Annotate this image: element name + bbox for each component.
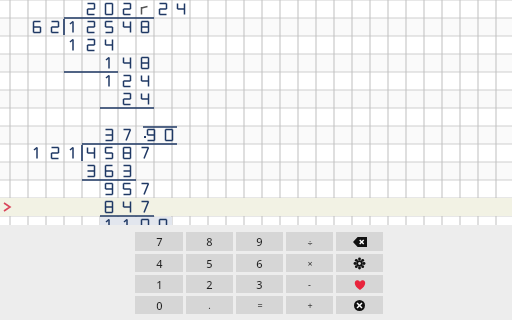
staticText: × bbox=[307, 257, 313, 269]
staticText: 5 bbox=[206, 256, 213, 271]
button[interactable]: 2 bbox=[186, 275, 233, 293]
button[interactable]: 8 bbox=[186, 232, 233, 251]
button[interactable]: Settings bbox=[336, 254, 383, 272]
staticText: - bbox=[308, 278, 311, 290]
button[interactable]: 5 bbox=[186, 254, 233, 272]
button[interactable]: + bbox=[286, 296, 333, 314]
button[interactable]: Clear bbox=[336, 296, 383, 314]
staticText: 6 bbox=[256, 256, 263, 271]
button[interactable]: 9 bbox=[236, 232, 283, 251]
button[interactable]: Favorite bbox=[336, 275, 383, 293]
button[interactable]: 0 bbox=[135, 296, 183, 314]
staticText: ÷ bbox=[307, 236, 313, 248]
staticText: 2 bbox=[206, 277, 213, 292]
button[interactable]: - bbox=[286, 275, 333, 293]
button[interactable]: 4 bbox=[135, 254, 183, 272]
button[interactable]: Backspace bbox=[336, 232, 383, 251]
staticText: 7 bbox=[156, 234, 163, 249]
staticText: 0 bbox=[156, 298, 163, 313]
button[interactable]: 1 bbox=[135, 275, 183, 293]
staticText: 4 bbox=[156, 256, 163, 271]
button[interactable]: × bbox=[286, 254, 333, 272]
staticText: + bbox=[307, 299, 313, 311]
staticText: 8 bbox=[206, 234, 213, 249]
button[interactable]: 6 bbox=[236, 254, 283, 272]
staticText: 3 bbox=[256, 277, 263, 292]
button[interactable]: . bbox=[186, 296, 233, 314]
button[interactable]: ÷ bbox=[286, 232, 333, 251]
staticText: 1 bbox=[156, 277, 163, 292]
staticText: 9 bbox=[256, 234, 263, 249]
button[interactable]: 3 bbox=[236, 275, 283, 293]
button[interactable]: 7 bbox=[135, 232, 183, 251]
staticText: . bbox=[208, 299, 211, 311]
staticText: = bbox=[257, 299, 263, 311]
button[interactable]: = bbox=[236, 296, 283, 314]
